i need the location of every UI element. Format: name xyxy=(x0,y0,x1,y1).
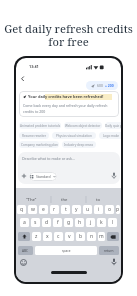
staticText: Animated problem tutorials xyxy=(20,124,61,128)
staticText: s xyxy=(34,219,37,226)
button[interactable]: v xyxy=(65,232,74,241)
staticText: g xyxy=(67,219,71,226)
button[interactable]: ABC xyxy=(18,246,33,255)
staticText: t xyxy=(65,206,67,213)
staticText: u xyxy=(86,206,90,213)
button[interactable]: t xyxy=(61,205,70,214)
staticText: w xyxy=(31,206,35,213)
staticText: for free xyxy=(0,34,137,49)
staticText: p xyxy=(116,206,120,213)
staticText: + 200 xyxy=(105,83,114,88)
staticText: 600 xyxy=(97,83,103,88)
button[interactable]: Industry deep resea xyxy=(62,141,96,148)
staticText: z xyxy=(35,233,38,240)
staticText: credits to 200 xyxy=(23,109,46,114)
button[interactable] xyxy=(111,172,117,180)
button[interactable]: Company marketing plan xyxy=(19,141,59,148)
staticText: Describe what to make or ask... xyxy=(22,156,75,161)
button[interactable]: a xyxy=(20,218,29,227)
button[interactable] xyxy=(18,232,30,241)
staticText: Come back every day and refresh your dai… xyxy=(23,103,108,108)
button[interactable]: m xyxy=(98,232,105,241)
staticText: f xyxy=(57,219,59,226)
button[interactable]: s xyxy=(31,218,40,227)
staticText: Get daily refresh credits xyxy=(0,21,137,36)
button[interactable] xyxy=(111,258,117,266)
staticText: o xyxy=(108,206,112,213)
button[interactable]: u xyxy=(83,205,92,214)
button[interactable]: i xyxy=(94,205,103,214)
staticText: l xyxy=(112,219,114,226)
button[interactable]: b xyxy=(76,232,85,241)
staticText: a xyxy=(23,219,26,226)
button[interactable]: Daily quiz ga xyxy=(105,122,121,129)
button[interactable]: x xyxy=(43,232,52,241)
staticText: space xyxy=(62,249,71,253)
staticText: y xyxy=(75,206,78,213)
button[interactable]: o xyxy=(105,205,114,214)
staticText: Your daily credits have been refreshed! xyxy=(28,94,104,99)
button[interactable]: space xyxy=(35,246,97,255)
button[interactable]: Physics visual simulation xyxy=(52,132,96,139)
button[interactable] xyxy=(21,76,25,82)
staticText: return xyxy=(104,249,114,253)
button[interactable]: p xyxy=(116,205,120,214)
staticText: to xyxy=(96,197,101,203)
staticText: c xyxy=(57,233,60,240)
staticText: v xyxy=(68,233,71,240)
button[interactable]: Your daily credits have been refreshed! xyxy=(19,91,119,117)
staticText: the xyxy=(61,197,68,203)
button[interactable]: c xyxy=(54,232,63,241)
button[interactable]: k xyxy=(97,218,106,227)
staticText: “The” xyxy=(26,197,37,203)
button[interactable]: 600 xyxy=(86,81,118,90)
staticText: i xyxy=(98,206,100,213)
button[interactable] xyxy=(20,259,27,266)
button[interactable]: Resume rewriter xyxy=(19,132,49,139)
staticText: m xyxy=(99,233,104,240)
staticText: 13:41 xyxy=(29,64,39,69)
button[interactable]: Describe what to make or ask... xyxy=(18,152,120,184)
button[interactable]: z xyxy=(32,232,41,241)
button[interactable]: h xyxy=(75,218,84,227)
staticText: Standard xyxy=(36,174,51,179)
button[interactable]: Animated problem tutorials xyxy=(19,122,61,129)
staticText: n xyxy=(90,233,94,240)
staticText: b xyxy=(79,233,83,240)
staticText: Industry deep resea xyxy=(64,143,94,147)
staticText: Webcam object detector xyxy=(65,124,101,128)
staticText: e xyxy=(42,206,45,213)
staticText: x xyxy=(46,233,49,240)
staticText: h xyxy=(78,219,82,226)
staticText: k xyxy=(100,219,103,226)
button[interactable]: f xyxy=(53,218,62,227)
button[interactable]: q xyxy=(17,205,26,214)
button[interactable]: return xyxy=(99,246,119,255)
staticText: ABC xyxy=(22,249,29,253)
button[interactable]: j xyxy=(86,218,95,227)
staticText: q xyxy=(20,206,24,213)
button[interactable]: n xyxy=(87,232,96,241)
button[interactable]: y xyxy=(72,205,81,214)
button[interactable]: Logo make xyxy=(99,132,121,139)
button[interactable]: e xyxy=(39,205,48,214)
button[interactable]: l xyxy=(108,218,117,227)
staticText: r xyxy=(53,206,56,213)
staticText: Company marketing plan xyxy=(21,143,58,147)
button[interactable]: r xyxy=(50,205,59,214)
button[interactable]: Webcam object detector xyxy=(64,122,102,129)
button[interactable]: Standard xyxy=(29,172,57,181)
button[interactable]: g xyxy=(64,218,73,227)
button[interactable] xyxy=(21,173,27,179)
staticText: Logo make xyxy=(103,134,120,138)
button[interactable]: d xyxy=(42,218,51,227)
button[interactable]: w xyxy=(28,205,37,214)
button[interactable] xyxy=(107,232,119,241)
staticText: j xyxy=(90,219,92,226)
staticText: Resume rewriter xyxy=(22,134,47,138)
staticText: Daily quiz ga xyxy=(105,124,121,128)
staticText: d xyxy=(45,219,49,226)
staticText: Physics visual simulation xyxy=(56,134,92,138)
